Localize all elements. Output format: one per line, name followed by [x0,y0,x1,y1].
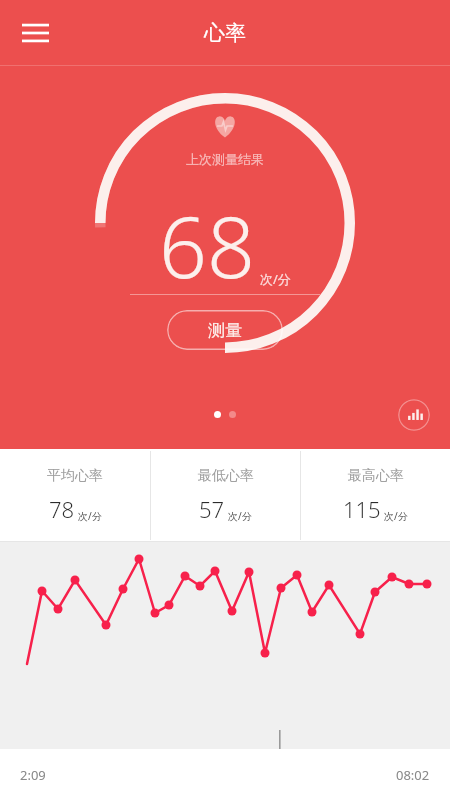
staticText: 2:09 [20,766,46,784]
staticText: 68 [159,188,255,302]
staticText: 次/分 [78,509,102,523]
button[interactable]: 平均心率 [0,449,150,542]
staticText: 78 [49,494,75,524]
staticText: 次/分 [228,509,252,523]
button[interactable] [0,542,450,749]
staticText: 次/分 [260,270,291,288]
staticText: 08:02 [396,766,430,784]
staticText: 测量 [208,320,242,341]
button[interactable]: History chart [398,399,430,431]
staticText: 最低心率 [198,467,254,485]
staticText: 上次测量结果 [186,151,264,167]
staticText: 57 [199,494,225,524]
staticText: 次/分 [384,509,408,523]
staticText: 平均心率 [47,467,103,485]
button[interactable]: 测量 [167,310,283,350]
button[interactable]: 最低心率 [151,449,300,542]
staticText: 115 [343,494,381,524]
staticText: 最高心率 [348,467,404,485]
button[interactable]: Menu [12,10,58,56]
staticText: 心率 [204,20,246,46]
button[interactable]: 最高心率 [301,449,450,542]
